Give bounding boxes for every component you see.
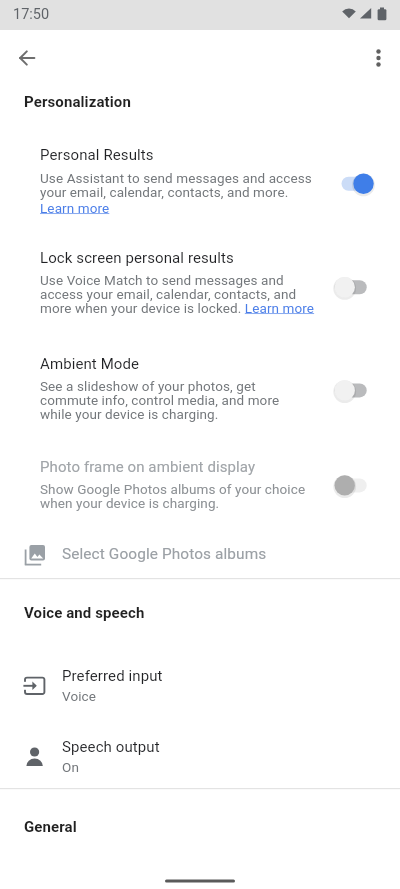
staticText: Voice <box>62 688 96 704</box>
button[interactable] <box>0 660 400 712</box>
staticText: access your email, calendar, contacts, a… <box>40 286 297 302</box>
staticText: Use Assistant to send messages and acces… <box>40 170 312 186</box>
button[interactable] <box>332 370 380 411</box>
staticText: Use Voice Match to send messages and <box>40 272 284 288</box>
button[interactable] <box>354 34 400 82</box>
staticText: Learn more <box>40 200 110 216</box>
button[interactable] <box>0 244 400 324</box>
button[interactable] <box>332 163 380 204</box>
staticText: when your device is charging. <box>40 495 220 511</box>
staticText: Personal Results <box>40 146 154 164</box>
staticText: more when your device is locked. Learn m… <box>40 300 315 316</box>
button[interactable] <box>0 535 400 577</box>
staticText: Lock screen personal results <box>40 249 234 267</box>
staticText: On <box>62 759 79 775</box>
button[interactable] <box>0 140 400 228</box>
staticText: Personalization <box>24 93 131 111</box>
staticText: Ambient Mode <box>40 355 140 373</box>
button[interactable] <box>0 453 400 517</box>
button[interactable] <box>4 34 52 82</box>
button[interactable] <box>0 350 400 428</box>
staticText: Speech output <box>62 738 160 756</box>
staticText: Select Google Photos albums <box>62 545 267 563</box>
staticText: Preferred input <box>62 667 163 685</box>
staticText: General <box>24 818 77 836</box>
button[interactable] <box>0 731 400 783</box>
staticText: Show Google Photos albums of your choice <box>40 481 306 497</box>
staticText: Photo frame on ambient display <box>40 458 256 476</box>
staticText: your email, calendar, contacts, and more… <box>40 184 289 200</box>
staticText: Voice and speech <box>24 604 145 622</box>
staticText: See a slideshow of your photos, get <box>40 378 256 394</box>
staticText: commute info, control media, and more <box>40 392 280 408</box>
staticText: while your device is charging. <box>40 406 219 422</box>
staticText: 17:50 <box>13 6 50 23</box>
button[interactable] <box>332 267 380 308</box>
